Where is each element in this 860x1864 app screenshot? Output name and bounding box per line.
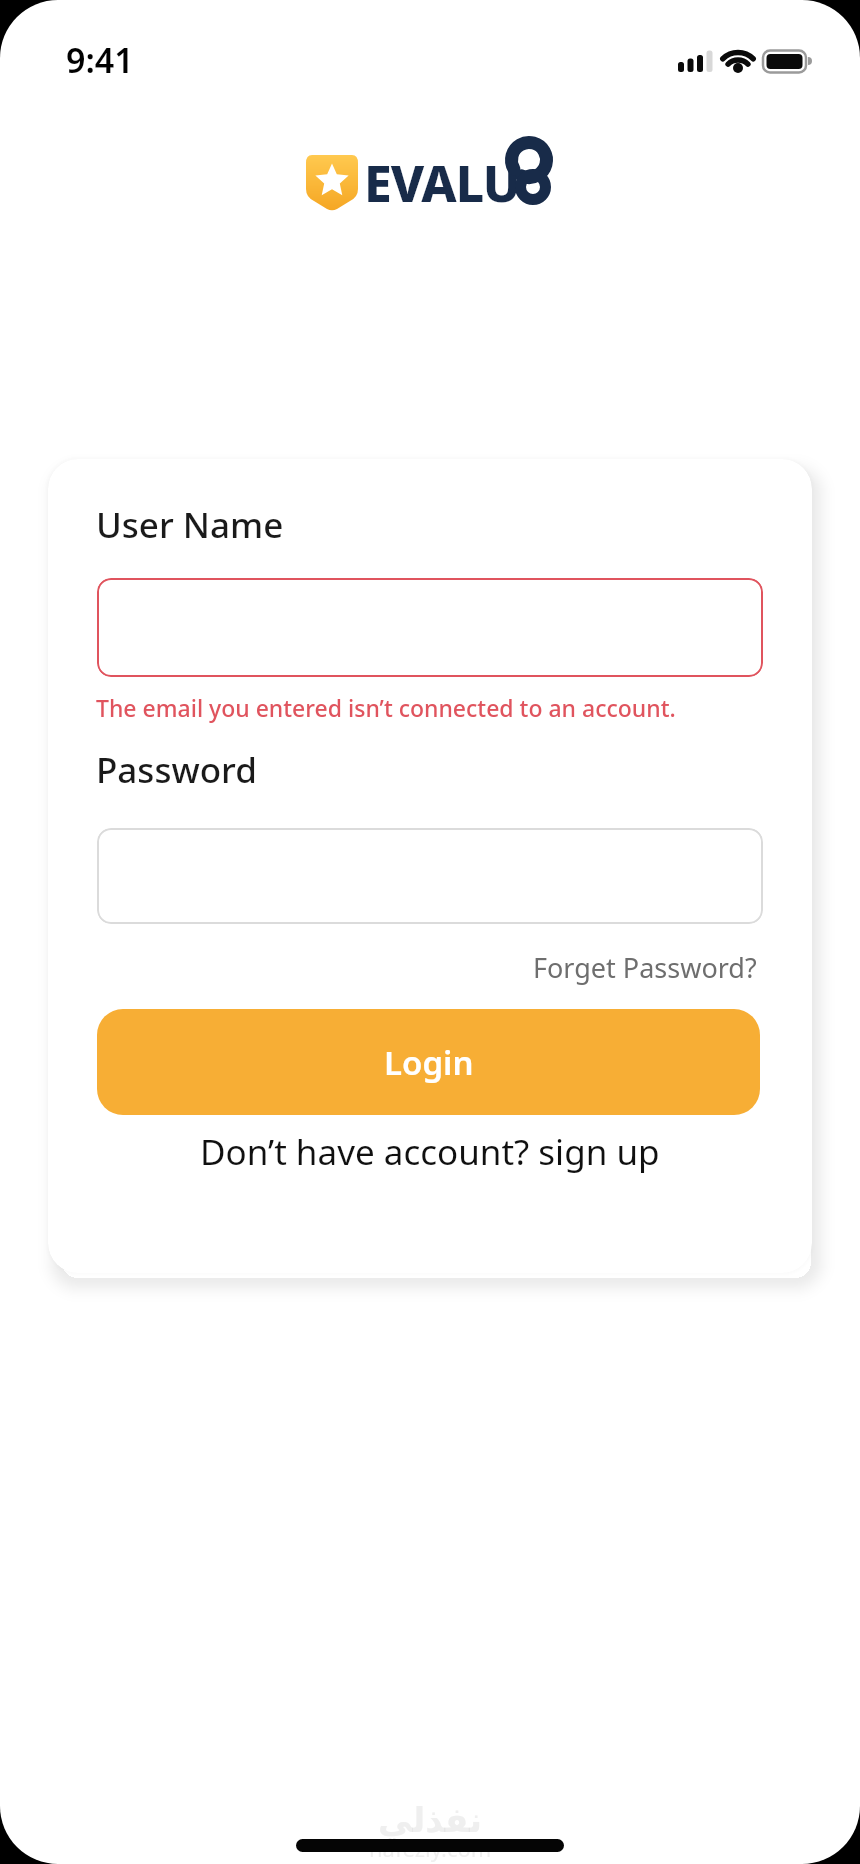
staticText: Password <box>96 746 257 794</box>
staticText: Login <box>384 1040 474 1085</box>
staticText: نفذلي <box>378 1800 483 1840</box>
button[interactable] <box>97 578 763 677</box>
button[interactable] <box>97 828 763 924</box>
staticText: EVALU <box>364 149 520 217</box>
button[interactable]: Login <box>97 1009 760 1115</box>
button[interactable]: Don’t have account? sign up <box>200 1128 660 1176</box>
staticText: Don’t have account? sign up <box>200 1128 660 1176</box>
staticText: The email you entered isn’t connected to… <box>96 692 676 723</box>
button[interactable]: Forget Password? <box>533 949 757 986</box>
staticText: 9:41 <box>66 37 134 83</box>
staticText: User Name <box>96 501 284 549</box>
staticText: nafezly.com <box>369 1833 492 1863</box>
staticText: Forget Password? <box>533 949 757 986</box>
